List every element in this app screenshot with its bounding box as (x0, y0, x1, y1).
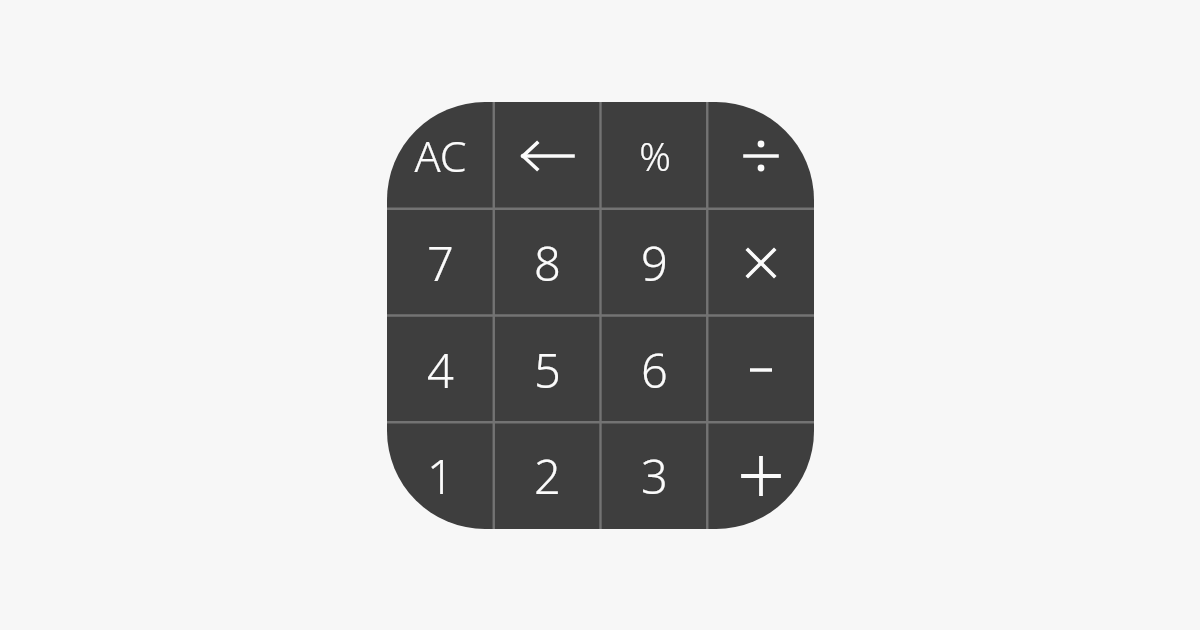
button[interactable]: 1 (387, 422, 494, 529)
staticText: 4 (427, 338, 454, 402)
staticText: 1 (427, 444, 454, 508)
button[interactable]: Add (707, 422, 814, 529)
button[interactable]: 5 (494, 316, 601, 423)
button[interactable]: Divide (707, 102, 814, 209)
button[interactable]: 2 (494, 422, 601, 529)
button[interactable]: Multiply (707, 209, 814, 316)
button[interactable]: 9 (601, 209, 708, 316)
button[interactable]: 4 (387, 316, 494, 423)
staticText: 7 (427, 231, 454, 295)
button[interactable]: 6 (601, 316, 708, 423)
staticText: % (639, 129, 671, 182)
staticText: AC (414, 126, 467, 185)
staticText: 9 (641, 231, 668, 295)
staticText: 6 (641, 338, 668, 402)
button[interactable]: Subtract (707, 316, 814, 423)
staticText: 2 (534, 444, 561, 508)
staticText: 5 (534, 338, 561, 402)
button[interactable]: 8 (494, 209, 601, 316)
button[interactable]: AC (387, 102, 494, 209)
button[interactable]: Backspace (494, 102, 601, 209)
button[interactable]: 7 (387, 209, 494, 316)
staticText: 8 (534, 231, 561, 295)
button[interactable]: % (601, 102, 708, 209)
button[interactable]: 3 (601, 422, 708, 529)
staticText: 3 (641, 444, 668, 508)
